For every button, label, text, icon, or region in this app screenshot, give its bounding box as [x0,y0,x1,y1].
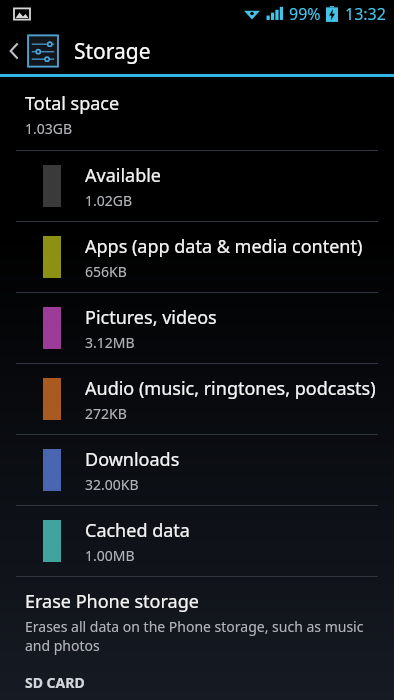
staticText: 99% [289,3,321,25]
button[interactable]: Downloads [0,435,394,505]
staticText: Available [85,163,161,188]
staticText: 1.00MB [85,546,135,565]
staticText: Cached data [85,518,190,543]
staticText: 1.02GB [85,191,133,210]
staticText: 13:32 [345,3,386,25]
button[interactable]: Pictures, videos [0,293,394,363]
staticText: Erase Phone storage [25,589,199,614]
staticText: SD CARD [25,673,85,692]
staticText: Apps (app data & media content) [85,234,363,259]
staticText: Storage [74,37,151,66]
button[interactable]: Available [0,151,394,221]
staticText: 32.00KB [85,475,139,494]
staticText: Total space [25,91,120,116]
button[interactable]: Apps (app data & media content) [0,222,394,292]
staticText: 656KB [85,262,127,281]
staticText: 3.12MB [85,333,135,352]
staticText: 272KB [85,404,127,423]
button[interactable]: Navigate up, Storage [0,28,394,74]
staticText: Downloads [85,447,180,472]
button[interactable]: Total space [0,77,394,150]
button[interactable]: Cached data [0,506,394,576]
button[interactable]: Erase Phone storage [0,577,394,665]
staticText: Audio (music, ringtones, podcasts) [85,376,376,401]
button[interactable]: Audio (music, ringtones, podcasts) [0,364,394,434]
staticText: 1.03GB [25,119,73,138]
staticText: Erases all data on the Phone storage, su… [25,617,364,655]
staticText: Pictures, videos [85,305,217,330]
